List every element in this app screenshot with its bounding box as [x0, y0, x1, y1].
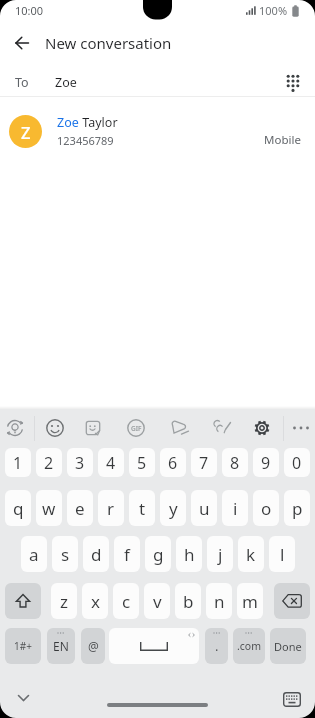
button[interactable]: 8: [222, 448, 248, 477]
staticText: c: [122, 590, 131, 613]
staticText: Mobile: [264, 132, 301, 148]
staticText: 0: [292, 452, 302, 474]
staticText: 2: [44, 452, 54, 474]
button[interactable]: f: [114, 536, 140, 572]
button[interactable]: [171, 420, 190, 436]
staticText: 10:00: [15, 3, 44, 18]
button[interactable]: 2: [36, 448, 62, 477]
staticText: @: [88, 638, 99, 654]
button[interactable]: 1: [5, 448, 31, 477]
button[interactable]: To: [0, 62, 315, 96]
staticText: .com: [237, 639, 262, 653]
button[interactable]: b: [175, 583, 201, 619]
staticText: Zoe: [55, 74, 77, 91]
staticText: 1: [13, 452, 23, 474]
staticText: e: [75, 497, 85, 520]
button[interactable]: u: [191, 490, 217, 526]
button[interactable]: [6, 27, 38, 59]
staticText: Z: [21, 121, 31, 143]
staticText: EN: [53, 638, 69, 654]
button[interactable]: GIF: [127, 419, 145, 437]
button[interactable]: t: [129, 490, 155, 526]
button[interactable]: e: [67, 490, 93, 526]
button[interactable]: a: [21, 536, 47, 572]
button[interactable]: [292, 425, 310, 431]
button[interactable]: [46, 419, 64, 437]
button[interactable]: k: [238, 536, 264, 572]
button[interactable]: [5, 583, 41, 619]
button[interactable]: 7: [191, 448, 217, 477]
staticText: 100%: [259, 3, 288, 18]
button[interactable]: d: [83, 536, 109, 572]
staticText: f: [124, 543, 130, 566]
button[interactable]: g: [145, 536, 171, 572]
staticText: 7: [199, 452, 209, 474]
staticText: b: [183, 590, 194, 613]
button[interactable]: .: [205, 628, 228, 664]
staticText: h: [184, 543, 195, 566]
button[interactable]: l: [269, 536, 295, 572]
button[interactable]: [283, 692, 301, 707]
button[interactable]: 0: [284, 448, 310, 477]
button[interactable]: j: [207, 536, 233, 572]
button[interactable]: p: [284, 490, 310, 526]
button[interactable]: o: [253, 490, 279, 526]
button[interactable]: r: [98, 490, 124, 526]
staticText: To: [15, 74, 29, 91]
staticText: o: [261, 497, 272, 520]
staticText: s: [61, 543, 70, 566]
staticText: 3: [75, 452, 85, 474]
button[interactable]: [274, 583, 310, 619]
button[interactable]: 9: [253, 448, 279, 477]
button[interactable]: 3: [67, 448, 93, 477]
button[interactable]: w: [36, 490, 62, 526]
button[interactable]: Done: [270, 628, 306, 664]
button[interactable]: q: [5, 490, 31, 526]
button[interactable]: [107, 703, 208, 707]
button[interactable]: c: [113, 583, 139, 619]
staticText: 9: [261, 452, 271, 474]
staticText: q: [13, 497, 24, 520]
staticText: 5: [137, 452, 147, 474]
button[interactable]: [280, 70, 306, 96]
button[interactable]: i: [222, 490, 248, 526]
staticText: g: [153, 543, 164, 566]
button[interactable]: h: [176, 536, 202, 572]
button[interactable]: @: [81, 628, 105, 664]
staticText: Taylor: [79, 114, 118, 131]
button[interactable]: [109, 628, 199, 664]
staticText: l: [280, 543, 285, 566]
button[interactable]: [252, 418, 272, 438]
staticText: d: [91, 543, 102, 566]
button[interactable]: Z: [0, 100, 315, 162]
button[interactable]: 1#+: [5, 628, 41, 664]
staticText: k: [246, 543, 256, 566]
button[interactable]: x: [82, 583, 108, 619]
staticText: z: [60, 590, 68, 613]
button[interactable]: z: [51, 583, 77, 619]
button[interactable]: EN: [47, 628, 75, 664]
button[interactable]: v: [144, 583, 170, 619]
button[interactable]: 4: [98, 448, 124, 477]
button[interactable]: y: [160, 490, 186, 526]
staticText: .: [215, 637, 219, 655]
button[interactable]: s: [52, 536, 78, 572]
staticText: v: [153, 590, 162, 613]
staticText: m: [242, 590, 258, 613]
button[interactable]: [85, 420, 101, 436]
staticText: 1#+: [14, 639, 32, 653]
button[interactable]: m: [237, 583, 263, 619]
staticText: p: [292, 497, 303, 520]
button[interactable]: n: [206, 583, 232, 619]
staticText: x: [91, 590, 100, 613]
button[interactable]: 5: [129, 448, 155, 477]
staticText: Zoe: [57, 114, 79, 131]
button[interactable]: 6: [160, 448, 186, 477]
button[interactable]: [5, 418, 25, 438]
button[interactable]: [18, 695, 29, 701]
button[interactable]: .com: [233, 628, 265, 664]
button[interactable]: [213, 419, 233, 437]
staticText: t: [139, 497, 146, 520]
staticText: r: [107, 497, 115, 520]
staticText: a: [29, 543, 39, 566]
